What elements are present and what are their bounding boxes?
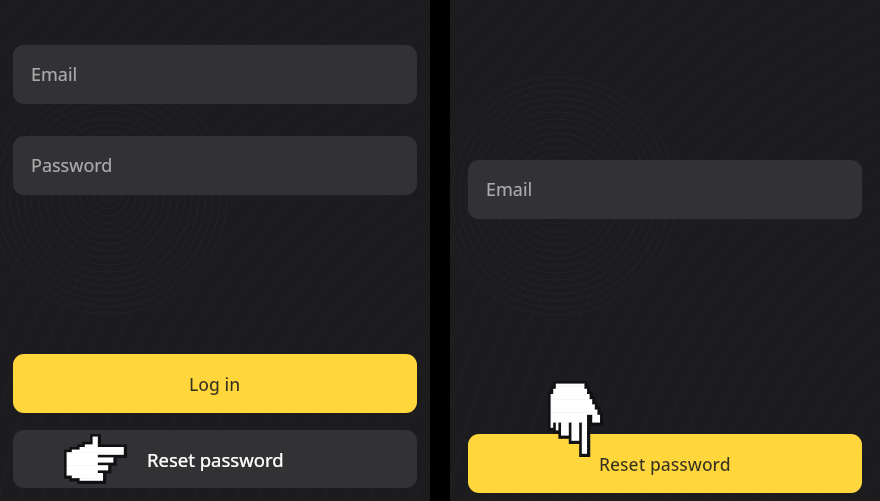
- button[interactable]: Log in: [13, 354, 417, 413]
- staticText: Reset password: [599, 452, 731, 476]
- staticText: Email: [31, 62, 78, 87]
- staticText: Password: [31, 153, 113, 178]
- staticText: Log in: [189, 372, 241, 396]
- button[interactable]: Reset password: [13, 430, 417, 488]
- button[interactable]: Reset password: [468, 434, 862, 493]
- staticText: Email: [486, 177, 533, 202]
- button[interactable]: Password: [13, 136, 417, 195]
- other: Pointer: [548, 381, 604, 459]
- other: Pointer: [64, 434, 128, 486]
- staticText: Reset password: [147, 447, 284, 472]
- button[interactable]: Email: [468, 160, 862, 219]
- button[interactable]: Email: [13, 45, 417, 104]
